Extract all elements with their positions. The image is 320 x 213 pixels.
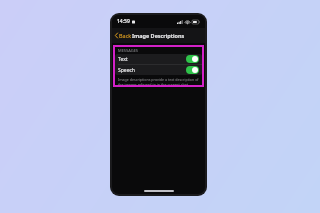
staticText: Text xyxy=(118,56,128,63)
staticText: Image Descriptions xyxy=(132,32,185,39)
button[interactable]: Toggle on xyxy=(186,55,199,63)
staticText: Image descriptions provide a text descri… xyxy=(118,77,199,85)
button[interactable]: Toggle on xyxy=(186,66,199,74)
staticText: Back xyxy=(119,32,132,39)
staticText: MESSAGES xyxy=(118,48,139,53)
staticText: Speech xyxy=(118,67,135,74)
staticText: 14:59 xyxy=(117,18,130,25)
button[interactable]: Text xyxy=(115,54,202,64)
button[interactable]: Speech xyxy=(115,65,202,75)
button[interactable]: Back xyxy=(112,30,135,41)
